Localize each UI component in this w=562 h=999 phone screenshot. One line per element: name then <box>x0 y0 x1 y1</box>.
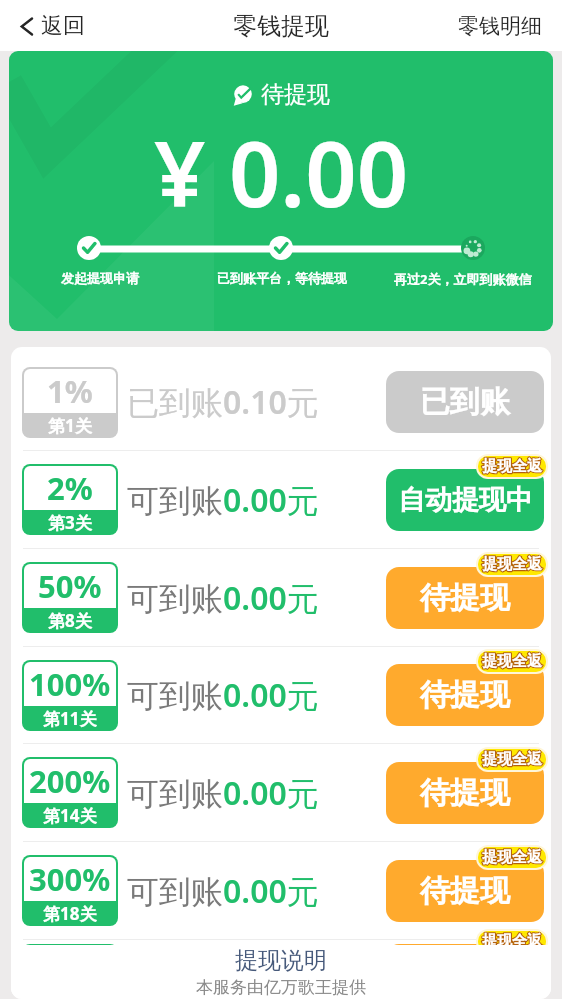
staticText: 可到账0.00元 <box>127 771 319 815</box>
staticText: 已到账 <box>420 383 510 421</box>
staticText: 可到账0.00元 <box>127 576 319 620</box>
button[interactable]: 待提现 <box>386 567 544 629</box>
button[interactable]: 零钱明细 <box>438 3 562 49</box>
staticText: 第11关 <box>43 707 97 730</box>
staticText: 待提现 <box>420 872 510 910</box>
staticText: 2% <box>47 467 93 509</box>
staticText: 提现全返 <box>482 932 542 951</box>
button[interactable]: 500% <box>11 944 551 999</box>
staticText: 已到账0.10元 <box>127 380 319 424</box>
staticText: 第1关 <box>48 414 92 437</box>
staticText: 返回 <box>41 12 85 40</box>
staticText: 零钱提现 <box>233 11 329 41</box>
staticText: 提现全返 <box>482 652 542 671</box>
staticText: 待提现 <box>420 676 510 714</box>
staticText: 发起提现申请 <box>61 270 139 286</box>
button[interactable]: 200% <box>11 744 551 841</box>
button[interactable]: 返回 <box>0 4 97 48</box>
staticText: 提现全返 <box>482 750 542 769</box>
staticText: 自动提现中 <box>398 483 533 517</box>
staticText: 可到账0.00元 <box>127 869 319 913</box>
other: Completed step <box>77 236 101 260</box>
button[interactable]: 50% <box>11 549 551 646</box>
staticText: 第18关 <box>43 902 97 925</box>
staticText: 提现全返 <box>482 848 542 867</box>
staticText: 提现说明 <box>235 946 327 975</box>
button[interactable]: 待提现 <box>386 944 544 999</box>
staticText: 第14关 <box>43 804 97 827</box>
button[interactable]: 待提现 <box>386 664 544 726</box>
staticText: 提现全返 <box>482 848 542 867</box>
staticText: 已到账平台，等待提现 <box>217 270 347 286</box>
button[interactable]: 提现说明 <box>11 945 551 999</box>
button[interactable]: 已到账 <box>386 371 544 433</box>
staticText: 第8关 <box>48 609 92 632</box>
staticText: 300% <box>29 858 111 900</box>
button[interactable]: 1% <box>11 354 551 450</box>
staticText: 提现全返 <box>482 932 542 951</box>
staticText: 提现全返 <box>482 457 542 476</box>
staticText: 待提现 <box>420 579 510 617</box>
button[interactable]: 待提现 <box>386 762 544 824</box>
staticText: ¥ 0.00 <box>154 111 409 234</box>
staticText: 1% <box>47 370 93 412</box>
staticText: 第3关 <box>48 511 92 534</box>
staticText: 待提现 <box>261 80 330 109</box>
staticText: 提现全返 <box>482 555 542 574</box>
staticText: 200% <box>29 760 111 802</box>
staticText: 可到账0.00元 <box>127 673 319 717</box>
staticText: 可到账0.00元 <box>127 478 319 522</box>
other: Pending step <box>461 236 485 260</box>
button[interactable]: 100% <box>11 647 551 743</box>
button[interactable]: 2% <box>11 451 551 548</box>
staticText: 再过2关，立即到账微信 <box>394 270 532 288</box>
staticText: 本服务由亿万歌王提供 <box>196 977 366 998</box>
staticText: 提现全返 <box>482 652 542 671</box>
staticText: 待提现 <box>420 774 510 812</box>
staticText: 提现全返 <box>482 750 542 769</box>
staticText: 提现全返 <box>482 457 542 476</box>
staticText: 提现全返 <box>482 555 542 574</box>
button[interactable]: 自动提现中 <box>386 469 544 531</box>
staticText: 100% <box>29 663 111 705</box>
staticText: 50% <box>38 565 102 607</box>
button[interactable]: 300% <box>11 842 551 939</box>
button[interactable]: 待提现 <box>386 860 544 922</box>
other: Completed step <box>269 236 293 260</box>
staticText: 可到账0.00元 <box>127 950 319 994</box>
